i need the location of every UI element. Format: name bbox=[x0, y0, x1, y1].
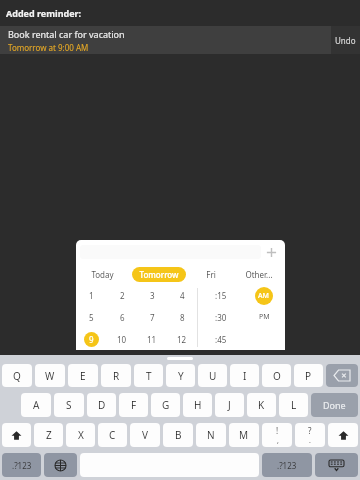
button[interactable]: 8 bbox=[167, 306, 197, 328]
staticText: . bbox=[309, 436, 311, 446]
staticText: :30 bbox=[215, 312, 227, 323]
button[interactable]: Q bbox=[2, 364, 32, 387]
button[interactable]: .?123 bbox=[2, 453, 41, 477]
staticText: 10 bbox=[117, 334, 127, 345]
staticText: Added reminder: bbox=[6, 7, 82, 19]
staticText: Tomorrow bbox=[139, 269, 179, 280]
button[interactable]: O bbox=[262, 364, 291, 387]
button[interactable]: G bbox=[151, 393, 180, 417]
button[interactable]: 2 bbox=[107, 285, 137, 306]
button[interactable]: A bbox=[21, 393, 51, 417]
button[interactable]: 4 bbox=[167, 285, 197, 306]
button[interactable]: 11 bbox=[137, 328, 167, 350]
button[interactable]: :45 bbox=[198, 328, 243, 350]
button[interactable]: Done bbox=[311, 393, 358, 417]
button[interactable]: Change keyboard language bbox=[44, 453, 77, 477]
staticText: R bbox=[113, 369, 120, 383]
button[interactable]: ! bbox=[262, 423, 292, 447]
staticText: Undo bbox=[335, 35, 356, 46]
button[interactable]: Undo bbox=[331, 26, 360, 54]
staticText: A bbox=[33, 398, 40, 412]
button[interactable]: Add bbox=[261, 242, 281, 262]
button[interactable]: Shift bbox=[328, 423, 358, 447]
button[interactable]: 1 bbox=[76, 285, 107, 306]
staticText: PM bbox=[259, 312, 270, 322]
button[interactable]: P bbox=[294, 364, 323, 387]
button[interactable]: L bbox=[279, 393, 308, 417]
button[interactable]: 10 bbox=[107, 328, 137, 350]
staticText: H bbox=[194, 398, 202, 412]
staticText: F bbox=[131, 398, 137, 412]
button[interactable]: 9 bbox=[76, 328, 107, 350]
button[interactable]: Backspace bbox=[326, 364, 358, 387]
staticText: C bbox=[109, 428, 116, 442]
staticText: .?123 bbox=[277, 460, 297, 471]
button[interactable]: N bbox=[196, 423, 226, 447]
button[interactable]: R bbox=[101, 364, 131, 387]
button[interactable]: B bbox=[163, 423, 193, 447]
button[interactable]: Tomorrow bbox=[139, 267, 179, 282]
button[interactable]: C bbox=[98, 423, 127, 447]
staticText: :45 bbox=[215, 334, 227, 345]
button[interactable]: Y bbox=[166, 364, 195, 387]
button[interactable]: T bbox=[134, 364, 163, 387]
button[interactable]: Fri bbox=[206, 269, 216, 280]
button[interactable]: 3 bbox=[137, 285, 167, 306]
staticText: W bbox=[45, 369, 55, 383]
staticText: O bbox=[273, 369, 281, 383]
button[interactable]: D bbox=[87, 393, 116, 417]
button[interactable]: ? bbox=[295, 423, 325, 447]
button[interactable]: X bbox=[66, 423, 95, 447]
staticText: G bbox=[162, 398, 170, 412]
staticText: Book rental car for vacation bbox=[8, 28, 125, 40]
button[interactable]: Shift bbox=[2, 423, 31, 447]
button[interactable]: Hide keyboard bbox=[315, 453, 358, 477]
button[interactable]: U bbox=[198, 364, 227, 387]
button[interactable]: F bbox=[119, 393, 148, 417]
staticText: 2 bbox=[120, 290, 125, 301]
button[interactable]: Other... bbox=[245, 269, 273, 280]
staticText: 4 bbox=[180, 290, 185, 301]
staticText: ! bbox=[276, 425, 279, 436]
button[interactable]: :15 bbox=[198, 285, 243, 306]
button[interactable]: Book rental car for vacation bbox=[0, 26, 331, 54]
button[interactable]: K bbox=[247, 393, 276, 417]
button[interactable]: 7 bbox=[137, 306, 167, 328]
button[interactable]: W bbox=[35, 364, 65, 387]
staticText: 12 bbox=[177, 334, 187, 345]
staticText: T bbox=[146, 369, 152, 383]
button[interactable]: J bbox=[215, 393, 244, 417]
staticText: Tomorrow at 9:00 AM bbox=[8, 42, 89, 53]
button[interactable]: 5 bbox=[76, 306, 107, 328]
staticText: 11 bbox=[147, 334, 157, 345]
staticText: ? bbox=[308, 425, 312, 436]
staticText: Done bbox=[323, 399, 346, 411]
staticText: 1 bbox=[89, 290, 94, 301]
button[interactable]: H bbox=[183, 393, 212, 417]
staticText: 9 bbox=[89, 334, 94, 345]
button[interactable]: E bbox=[68, 364, 98, 387]
button[interactable]: 6 bbox=[107, 306, 137, 328]
button[interactable]: I bbox=[230, 364, 259, 387]
button[interactable]: S bbox=[54, 393, 84, 417]
button[interactable]: Z bbox=[34, 423, 63, 447]
staticText: Fri bbox=[206, 269, 216, 280]
staticText: :15 bbox=[215, 290, 227, 301]
staticText: N bbox=[207, 428, 215, 442]
staticText: M bbox=[239, 428, 249, 442]
staticText: D bbox=[98, 398, 106, 412]
staticText: 3 bbox=[150, 290, 155, 301]
staticText: L bbox=[291, 398, 297, 412]
button[interactable]: .?123 bbox=[262, 453, 312, 477]
button[interactable]: Today bbox=[91, 269, 114, 280]
staticText: E bbox=[80, 369, 86, 383]
staticText: B bbox=[175, 428, 182, 442]
button[interactable]: V bbox=[130, 423, 160, 447]
button[interactable]: M bbox=[229, 423, 259, 447]
button[interactable]: 12 bbox=[167, 328, 197, 350]
button[interactable]: AM bbox=[255, 287, 273, 305]
button[interactable]: PM bbox=[255, 308, 273, 326]
button[interactable]: :30 bbox=[198, 306, 243, 328]
